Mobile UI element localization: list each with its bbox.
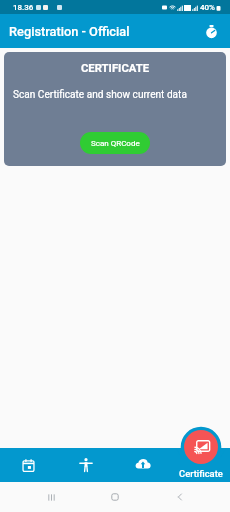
button[interactable]: Recents xyxy=(37,483,65,511)
staticText: Scan Certificate and show current data xyxy=(13,89,187,101)
button[interactable]: Scan QRCode xyxy=(80,132,150,154)
staticText: CERTIFICATE xyxy=(4,62,226,75)
button[interactable]: Back xyxy=(166,483,194,511)
staticText: 18.36 xyxy=(13,3,34,12)
staticText: 40% xyxy=(200,3,215,12)
staticText: Registration - Official xyxy=(9,24,130,39)
button[interactable]: Events xyxy=(0,448,57,482)
button[interactable]: Upload xyxy=(114,448,172,482)
staticText: Certificate xyxy=(179,468,223,479)
button[interactable]: Home xyxy=(101,483,129,511)
staticText: Scan QRCode xyxy=(91,139,140,148)
button[interactable]: Timer xyxy=(198,18,224,44)
button[interactable]: Accessibility xyxy=(57,448,114,482)
button[interactable]: Scan certificate xyxy=(184,430,218,464)
